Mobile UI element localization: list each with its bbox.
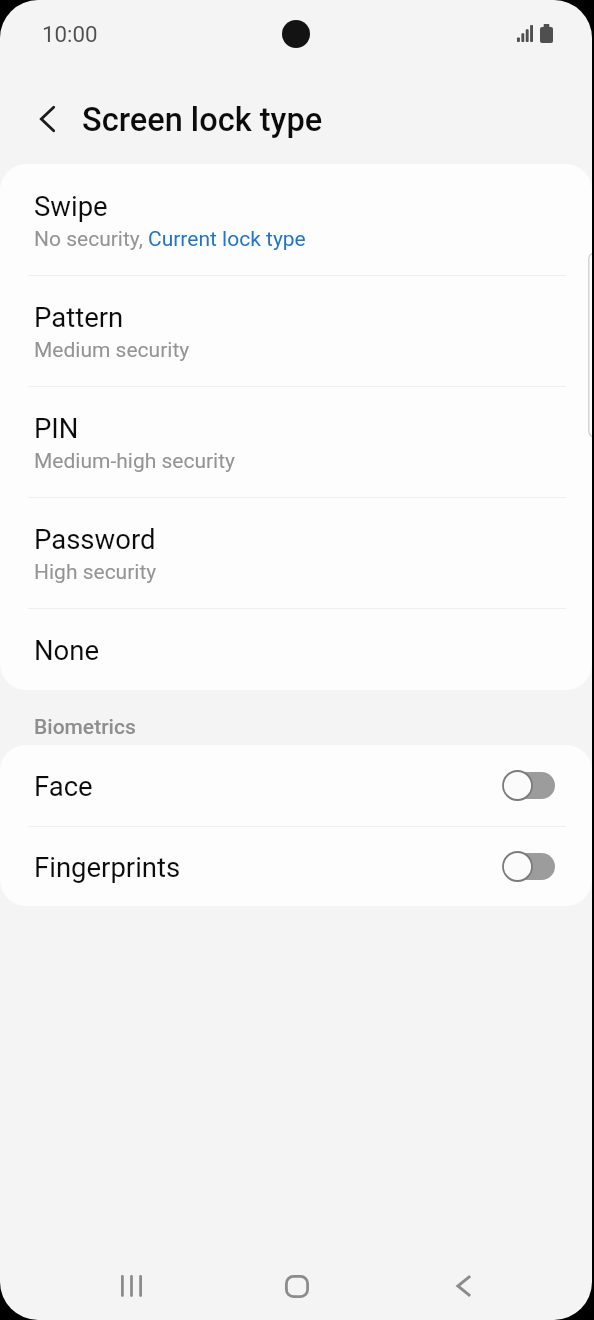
staticText: No security, Current lock type bbox=[34, 227, 306, 252]
button[interactable]: Home bbox=[214, 1252, 379, 1320]
button[interactable]: None bbox=[0, 609, 592, 690]
staticText: Fingerprints bbox=[34, 851, 181, 883]
button[interactable]: Swipe bbox=[0, 164, 592, 275]
button[interactable]: Back bbox=[379, 1252, 544, 1320]
staticText: PIN bbox=[34, 412, 79, 444]
staticText: 10:00 bbox=[42, 21, 98, 47]
button[interactable]: Recent apps bbox=[48, 1252, 214, 1320]
other: Toggle bbox=[502, 770, 555, 801]
staticText: Pattern bbox=[34, 301, 124, 333]
staticText: Screen lock type bbox=[82, 101, 323, 139]
staticText: Biometrics bbox=[34, 715, 136, 740]
staticText: Medium-high security bbox=[34, 449, 236, 474]
button[interactable]: Navigate up bbox=[20, 93, 72, 145]
button[interactable]: Fingerprints bbox=[0, 827, 592, 906]
staticText: Password bbox=[34, 523, 156, 555]
button[interactable]: Face bbox=[0, 745, 592, 826]
staticText: Swipe bbox=[34, 190, 108, 222]
button[interactable]: PIN bbox=[0, 387, 592, 497]
staticText: High security bbox=[34, 560, 157, 585]
button[interactable]: Pattern bbox=[0, 276, 592, 386]
staticText: Face bbox=[34, 770, 93, 802]
staticText: None bbox=[34, 634, 100, 666]
other: Toggle bbox=[502, 851, 555, 882]
button[interactable]: Password bbox=[0, 498, 592, 608]
staticText: Medium security bbox=[34, 338, 190, 363]
